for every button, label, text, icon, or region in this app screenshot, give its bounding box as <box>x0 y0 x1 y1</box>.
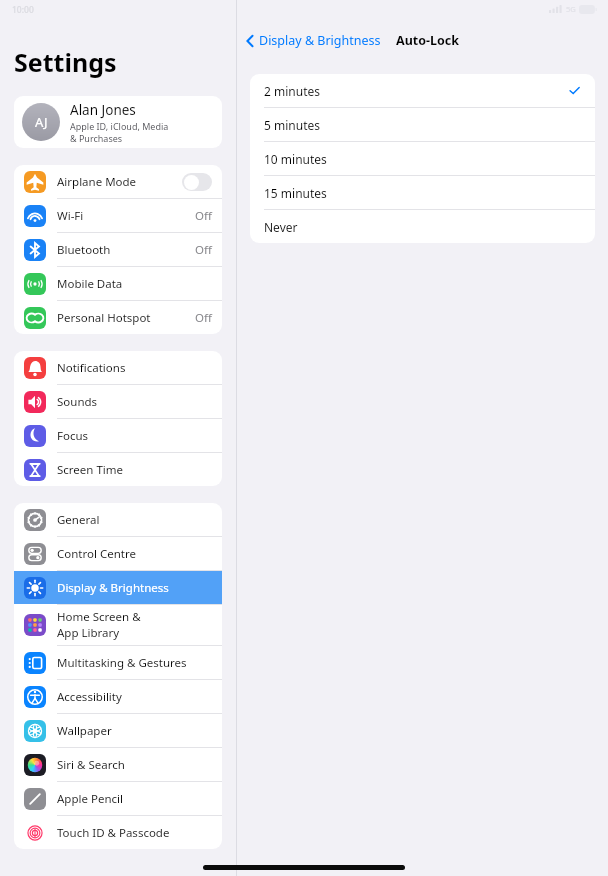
staticText: AJ <box>35 113 48 131</box>
button[interactable]: AJ <box>14 96 222 148</box>
staticText: Mobile Data <box>57 276 212 292</box>
button[interactable]: Bluetooth <box>14 233 222 266</box>
button[interactable]: Back <box>237 29 387 52</box>
button[interactable]: 2 minutes <box>250 74 595 107</box>
staticText: Screen Time <box>57 462 212 478</box>
staticText: Sounds <box>57 394 212 410</box>
staticText: Focus <box>57 428 212 444</box>
staticText: Bluetooth <box>57 242 195 258</box>
button[interactable]: Home Screen & <box>14 605 222 645</box>
button[interactable]: Focus <box>14 419 222 452</box>
button[interactable]: Accessibility <box>14 680 222 713</box>
staticText: 15 minutes <box>264 185 581 201</box>
staticText: 10:00 <box>12 4 34 16</box>
staticText: Off <box>195 310 212 326</box>
staticText: Off <box>195 242 212 258</box>
staticText: Accessibility <box>57 689 212 705</box>
staticText: Notifications <box>57 360 212 376</box>
button[interactable]: 5 minutes <box>250 108 595 141</box>
button[interactable]: Never <box>250 210 595 243</box>
staticText: Never <box>264 219 581 235</box>
button[interactable]: Personal Hotspot <box>14 301 222 334</box>
button[interactable]: Sounds <box>14 385 222 418</box>
staticText: Personal Hotspot <box>57 310 195 326</box>
staticText: Display & Brightness <box>57 580 212 596</box>
button[interactable]: Wallpaper <box>14 714 222 747</box>
staticText: Apple Pencil <box>57 791 212 807</box>
button[interactable]: Siri & Search <box>14 748 222 781</box>
staticText: Apple ID, iCloud, Media <box>70 120 169 132</box>
staticText: Display & Brightness <box>259 32 381 49</box>
staticText: 5 minutes <box>264 117 581 133</box>
staticText: Multitasking & Gestures <box>57 655 212 671</box>
button[interactable]: Airplane Mode <box>14 165 222 198</box>
button[interactable]: Display & Brightness <box>14 571 222 604</box>
button[interactable]: Wi-Fi <box>14 199 222 232</box>
button[interactable]: Control Centre <box>14 537 222 570</box>
staticText: Siri & Search <box>57 757 212 773</box>
staticText: Auto-Lock <box>396 32 460 49</box>
staticText: 5G <box>566 4 576 14</box>
staticText: 10 minutes <box>264 151 581 167</box>
staticText: App Library <box>57 625 120 641</box>
staticText: Wi-Fi <box>57 208 195 224</box>
button[interactable]: Airplane Mode toggle <box>182 173 212 191</box>
button[interactable]: General <box>14 503 222 536</box>
button[interactable]: Multitasking & Gestures <box>14 646 222 679</box>
staticText: Control Centre <box>57 546 212 562</box>
staticText: General <box>57 512 212 528</box>
staticText: 2 minutes <box>264 83 568 99</box>
button[interactable]: Mobile Data <box>14 267 222 300</box>
button[interactable]: Apple Pencil <box>14 782 222 815</box>
button[interactable]: 10 minutes <box>250 142 595 175</box>
button[interactable]: Touch ID & Passcode <box>14 816 222 849</box>
staticText: Alan Jones <box>70 101 136 119</box>
button[interactable]: 15 minutes <box>250 176 595 209</box>
staticText: & Purchases <box>70 132 123 144</box>
button[interactable]: Notifications <box>14 351 222 384</box>
staticText: Home Screen & <box>57 609 141 625</box>
staticText: Settings <box>14 45 117 79</box>
button[interactable]: Screen Time <box>14 453 222 486</box>
staticText: Touch ID & Passcode <box>57 825 212 841</box>
other: Back <box>246 34 254 48</box>
staticText: Off <box>195 208 212 224</box>
staticText: Airplane Mode <box>57 174 182 190</box>
staticText: Wallpaper <box>57 723 212 739</box>
